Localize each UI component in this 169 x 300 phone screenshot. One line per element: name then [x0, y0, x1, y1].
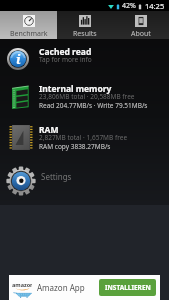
button[interactable]: i	[0, 39, 169, 78]
staticText: Results	[73, 29, 97, 39]
staticText: Benchmark	[10, 29, 48, 39]
staticText: RAM	[39, 124, 59, 136]
staticText: RAM copy 3838.27MB/s	[39, 142, 111, 151]
staticText: Settings	[41, 171, 72, 182]
staticText: About	[131, 29, 151, 39]
staticText: Internal memory	[39, 83, 112, 95]
staticText: 14:25	[145, 1, 165, 11]
staticText: 42%	[122, 1, 136, 11]
button[interactable]: amazon	[9, 275, 160, 300]
staticText: 2,827MB total · 1,657MB free	[39, 133, 128, 142]
staticText: 23,806MB total · 20,588MB free	[39, 92, 135, 101]
button[interactable]: Benchmark	[0, 11, 57, 39]
staticText: amazon	[12, 281, 32, 288]
button[interactable]: About	[113, 11, 169, 39]
staticText: i	[16, 50, 21, 68]
button[interactable]: INSTALLIEREN	[99, 279, 156, 296]
button[interactable]: Results	[57, 11, 113, 39]
staticText: Tap for more info	[39, 55, 92, 64]
staticText: INSTALLIEREN	[105, 283, 151, 292]
staticText: Amazon App	[37, 282, 85, 293]
staticText: Cached read	[39, 46, 92, 58]
staticText: Read 204.77MB/s · Write 79.51MB/s	[39, 101, 148, 110]
button[interactable]: RAM	[0, 118, 169, 160]
button[interactable]: Internal memory	[0, 78, 169, 118]
button[interactable]: Settings	[0, 160, 169, 205]
